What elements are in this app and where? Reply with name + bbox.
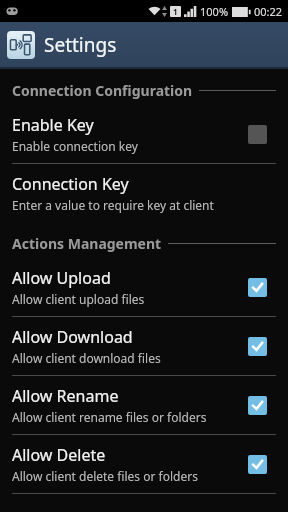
staticText: 1 bbox=[173, 6, 178, 17]
staticText: Connection Key bbox=[12, 173, 129, 195]
staticText: Settings bbox=[44, 32, 117, 58]
staticText: Allow Download bbox=[12, 326, 133, 348]
staticText: Actions Management bbox=[12, 234, 162, 253]
staticText: Allow client upload files bbox=[12, 291, 145, 307]
staticText: Connection Configuration bbox=[12, 81, 193, 100]
staticText: Enter a value to require key at client bbox=[12, 197, 214, 213]
staticText: 100% bbox=[200, 4, 229, 19]
staticText: Allow client download files bbox=[12, 350, 161, 366]
staticText: Allow Rename bbox=[12, 385, 119, 407]
staticText: Allow client delete files or folders bbox=[12, 468, 198, 484]
staticText: Allow client rename files or folders bbox=[12, 409, 207, 425]
button[interactable]: Connection Key bbox=[0, 164, 288, 222]
staticText: Enable connection key bbox=[12, 138, 138, 154]
staticText: Enable Key bbox=[12, 114, 94, 136]
staticText: 00:22 bbox=[254, 4, 283, 19]
button[interactable]: Allow Download bbox=[0, 317, 288, 375]
button[interactable]: Allow Delete bbox=[0, 435, 288, 493]
button[interactable]: Allow Rename bbox=[0, 376, 288, 434]
staticText: Allow Upload bbox=[12, 267, 111, 289]
button[interactable]: Enable Key bbox=[0, 105, 288, 163]
staticText: Allow Delete bbox=[12, 444, 106, 466]
button[interactable]: Allow Upload bbox=[0, 258, 288, 316]
